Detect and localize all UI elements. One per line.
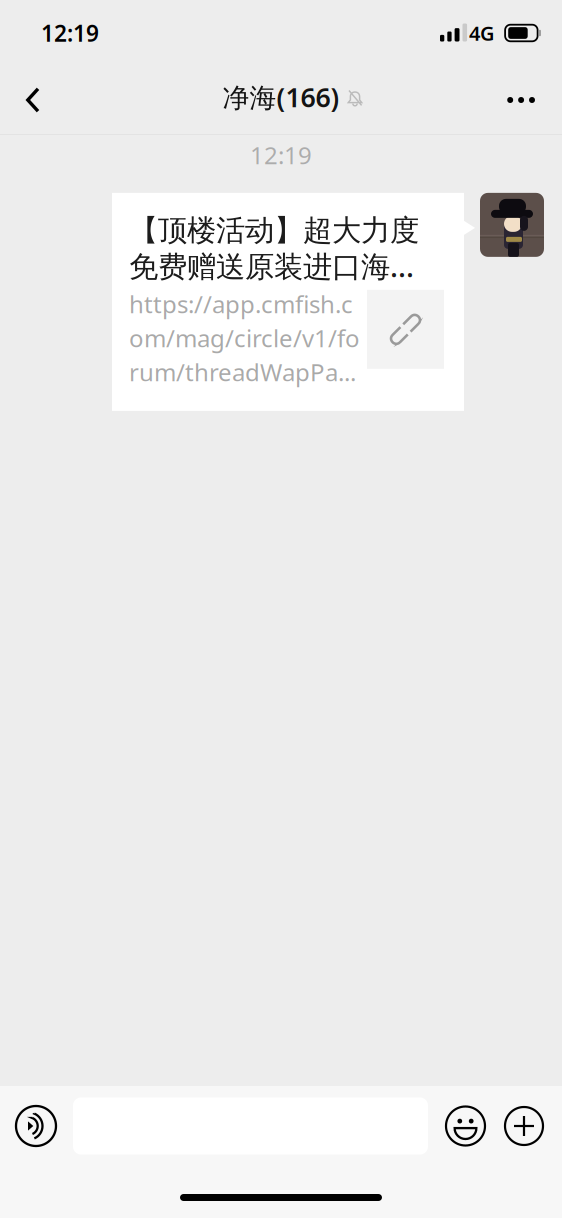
staticText: rum/threadWapPa... xyxy=(129,356,356,388)
staticText: om/mag/circle/v1/fo xyxy=(129,322,360,354)
button[interactable]: Back xyxy=(26,69,82,131)
button[interactable]: Emoji xyxy=(437,1086,494,1166)
staticText: 12:19 xyxy=(250,139,312,171)
staticText: 免费赠送原装进口海... xyxy=(129,246,414,285)
staticText: 【顶楼活动】超大力度 xyxy=(129,212,419,248)
staticText: https://app.cmfish.c xyxy=(129,288,353,320)
button[interactable]: More xyxy=(479,69,535,131)
button[interactable]: Message input field xyxy=(64,1086,437,1166)
staticText: 12:19 xyxy=(41,18,99,48)
staticText: 4G xyxy=(469,20,495,46)
button[interactable]: Voice message xyxy=(8,1086,64,1166)
button[interactable]: More xyxy=(494,1086,554,1166)
staticText: 净海(166) xyxy=(222,79,339,115)
